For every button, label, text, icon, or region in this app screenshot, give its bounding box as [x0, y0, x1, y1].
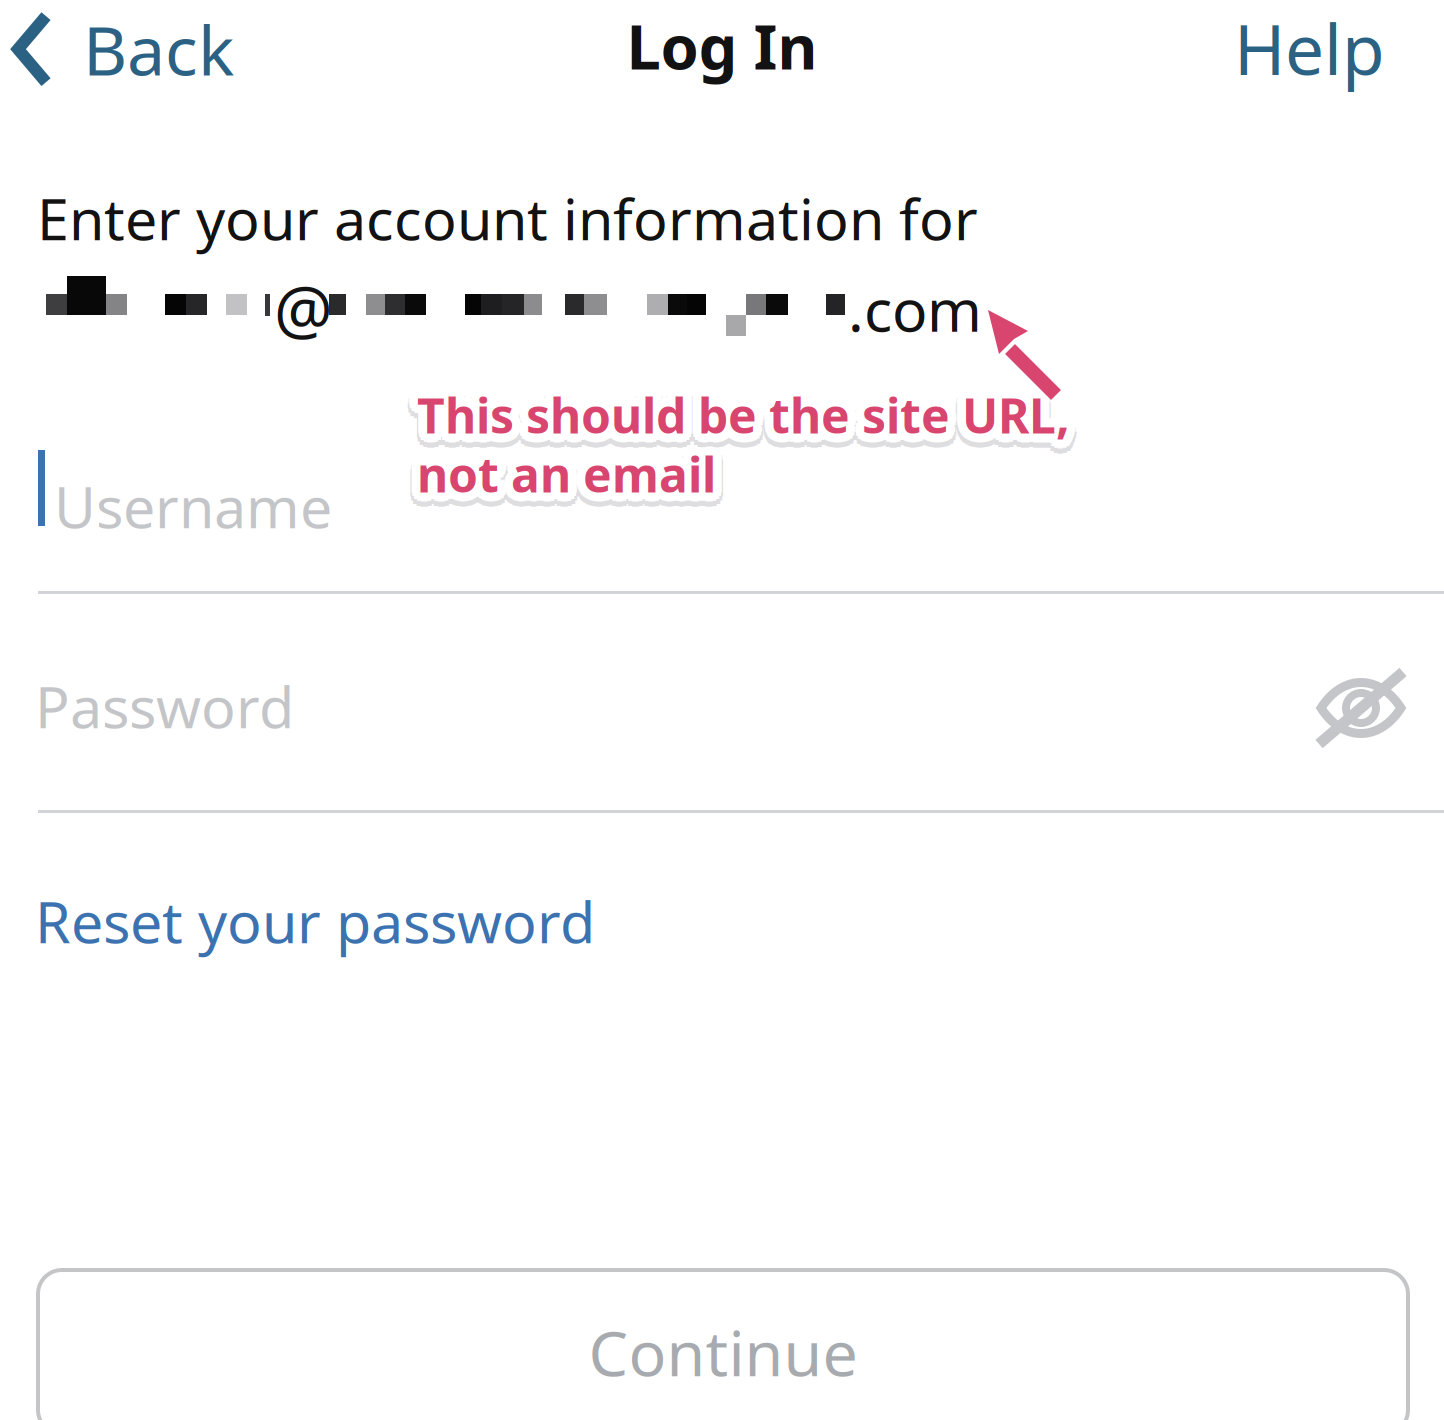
- staticText: This should be the site URL,: [417, 397, 1070, 461]
- staticText: not an email: [407, 442, 706, 506]
- staticText: This should be the site URL,: [421, 396, 1074, 460]
- staticText: This should be the site URL,: [426, 383, 1079, 447]
- button[interactable]: Back: [12, 0, 234, 98]
- staticText: This should be the site URL,: [413, 396, 1066, 460]
- staticText: not an email: [417, 433, 716, 497]
- staticText: not an email: [417, 452, 716, 515]
- staticText: not an email: [423, 435, 722, 499]
- staticText: not an email: [417, 437, 716, 501]
- staticText: Enter your account information for: [37, 180, 978, 256]
- staticText: This should be the site URL,: [421, 377, 1074, 441]
- staticText: not an email: [407, 450, 706, 514]
- staticText: not an email: [423, 446, 722, 510]
- button[interactable]: Show password: [1317, 670, 1405, 746]
- staticText: This should be the site URL,: [413, 377, 1066, 441]
- staticText: This should be the site URL,: [417, 392, 1070, 456]
- staticText: not an email: [412, 442, 711, 506]
- staticText: This should be the site URL,: [417, 378, 1070, 442]
- staticText: not an email: [410, 435, 709, 499]
- staticText: This should be the site URL,: [424, 394, 1077, 458]
- staticText: not an email: [417, 451, 716, 515]
- staticText: This should be the site URL,: [417, 388, 1070, 452]
- staticText: Back: [83, 4, 234, 94]
- staticText: not an email: [409, 445, 708, 509]
- staticText: This should be the site URL,: [420, 375, 1073, 438]
- staticText: This should be the site URL,: [412, 383, 1065, 447]
- staticText: not an email: [408, 442, 707, 506]
- staticText: not an email: [424, 453, 723, 517]
- staticText: not an email: [423, 448, 722, 512]
- button[interactable]: Username: [38, 420, 1406, 590]
- staticText: This should be the site URL,: [424, 379, 1077, 443]
- staticText: Log In: [626, 5, 817, 86]
- staticText: This should be the site URL,: [409, 380, 1062, 443]
- button[interactable]: Help: [1220, 0, 1399, 100]
- staticText: not an email: [417, 447, 716, 511]
- staticText: This should be the site URL,: [417, 377, 1070, 440]
- staticText: This should be the site URL,: [417, 374, 1070, 438]
- staticText: This should be the site URL,: [423, 376, 1076, 440]
- staticText: This should be the site URL,: [423, 387, 1076, 451]
- staticText: not an email: [425, 439, 724, 502]
- staticText: This should be the site URL,: [426, 383, 1079, 447]
- staticText: not an email: [417, 436, 716, 499]
- staticText: not an email: [413, 436, 712, 500]
- staticText: not an email: [426, 450, 725, 514]
- staticText: This should be the site URL,: [410, 389, 1063, 453]
- staticText: Password: [35, 668, 294, 744]
- staticText: This should be the site URL,: [417, 393, 1070, 456]
- staticText: not an email: [413, 455, 712, 519]
- staticText: not an email: [427, 446, 726, 510]
- staticText: not an email: [410, 448, 709, 512]
- staticText: This should be the site URL,: [425, 380, 1078, 443]
- staticText: Help: [1234, 2, 1385, 94]
- staticText: not an email: [425, 445, 724, 509]
- staticText: not an email: [417, 456, 716, 520]
- button[interactable]: Password: [38, 640, 1406, 808]
- staticText: This should be the site URL,: [407, 383, 1060, 447]
- staticText: This should be the site URL,: [409, 394, 1062, 458]
- staticText: not an email: [411, 446, 710, 510]
- staticText: This should be the site URL,: [409, 386, 1062, 450]
- staticText: @: [274, 265, 333, 352]
- staticText: This should be the site URL,: [426, 391, 1079, 455]
- button[interactable]: Reset your password: [35, 883, 595, 959]
- staticText: This should be the site URL,: [408, 383, 1061, 447]
- staticText: not an email: [421, 455, 720, 519]
- staticText: not an email: [426, 442, 725, 506]
- staticText: This should be the site URL,: [417, 381, 1070, 445]
- staticText: This should be the site URL,: [407, 387, 1060, 451]
- staticText: not an email: [417, 440, 716, 504]
- staticText: not an email: [424, 438, 723, 502]
- staticText: not an email: [426, 442, 725, 506]
- staticText: Reset your password: [35, 883, 595, 959]
- staticText: Continue: [588, 1310, 857, 1394]
- staticText: Username: [54, 468, 332, 544]
- staticText: not an email: [409, 438, 708, 502]
- staticText: This should be the site URL,: [414, 391, 1067, 455]
- staticText: This should be the site URL,: [420, 391, 1073, 455]
- staticText: not an email: [422, 442, 721, 506]
- staticText: This should be the site URL,: [414, 375, 1067, 438]
- staticText: This should be the site URL,: [409, 379, 1062, 443]
- staticText: not an email: [420, 434, 719, 497]
- staticText: not an email: [414, 450, 713, 514]
- staticText: This should be the site URL,: [422, 383, 1075, 447]
- staticText: This should be the site URL,: [423, 389, 1076, 453]
- staticText: not an email: [420, 450, 719, 514]
- staticText: not an email: [421, 436, 720, 500]
- staticText: not an email: [414, 434, 713, 497]
- staticText: This should be the site URL,: [417, 383, 1070, 447]
- staticText: not an email: [409, 439, 708, 502]
- staticText: not an email: [407, 446, 706, 510]
- button[interactable]: Continue: [38, 1270, 1408, 1420]
- staticText: .com: [848, 270, 982, 348]
- staticText: not an email: [417, 442, 716, 506]
- staticText: This should be the site URL,: [410, 376, 1063, 440]
- staticText: This should be the site URL,: [407, 391, 1060, 455]
- staticText: This should be the site URL,: [427, 387, 1080, 451]
- staticText: not an email: [409, 453, 708, 517]
- staticText: This should be the site URL,: [425, 386, 1078, 450]
- staticText: This should be the site URL,: [411, 387, 1064, 451]
